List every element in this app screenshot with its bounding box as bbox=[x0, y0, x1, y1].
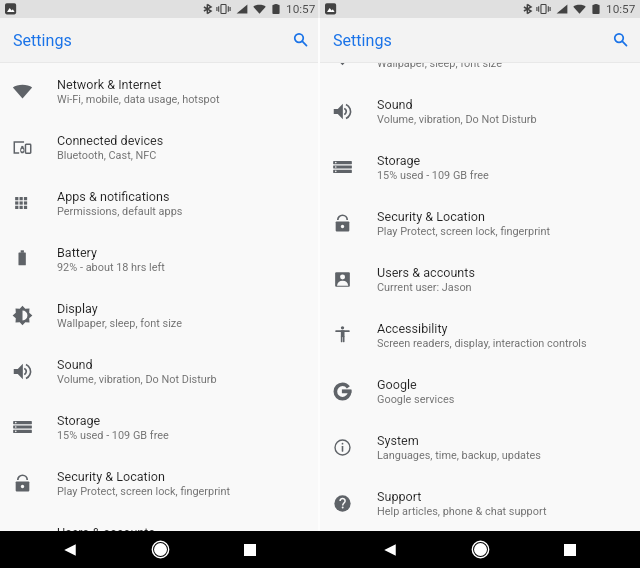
staticText: Help articles, phone & chat support bbox=[377, 505, 547, 518]
staticText: System bbox=[377, 433, 419, 448]
staticText: Wallpaper, sleep, font size bbox=[377, 63, 502, 70]
staticText: Security & Location bbox=[377, 209, 485, 224]
staticText: Storage bbox=[377, 153, 421, 168]
button[interactable]: Display bbox=[320, 63, 640, 83]
button[interactable]: Security & Location bbox=[320, 195, 640, 251]
button[interactable]: Recents bbox=[500, 531, 640, 568]
staticText: Play Protect, screen lock, fingerprint bbox=[57, 485, 231, 498]
staticText: 15% used - 109 GB free bbox=[57, 429, 169, 442]
staticText: Volume, vibration, Do Not Disturb bbox=[57, 373, 217, 386]
staticText: Accessibility bbox=[377, 321, 448, 336]
staticText: Google bbox=[377, 377, 417, 392]
staticText: Storage bbox=[57, 413, 101, 428]
button[interactable]: Apps & notifications bbox=[0, 175, 320, 231]
staticText: Sound bbox=[57, 357, 93, 372]
button[interactable]: Sound bbox=[320, 83, 640, 139]
button[interactable]: Google bbox=[320, 363, 640, 419]
button[interactable]: Network & Internet bbox=[0, 63, 320, 119]
staticText: Screen readers, display, interaction con… bbox=[377, 337, 587, 350]
staticText: Apps & notifications bbox=[57, 189, 170, 204]
button[interactable]: Search bbox=[605, 25, 635, 55]
staticText: 10:57 bbox=[606, 2, 636, 16]
button[interactable]: Support bbox=[320, 475, 640, 531]
staticText: Google services bbox=[377, 393, 455, 406]
staticText: 10:57 bbox=[286, 2, 316, 16]
staticText: Wallpaper, sleep, font size bbox=[57, 317, 182, 330]
staticText: Languages, time, backup, updates bbox=[377, 449, 541, 462]
button[interactable]: Users & accounts bbox=[0, 511, 320, 531]
staticText: 15% used - 109 GB free bbox=[377, 169, 489, 182]
button[interactable]: Sound bbox=[0, 343, 320, 399]
staticText: Users & accounts bbox=[57, 525, 155, 531]
staticText: 92% - about 18 hrs left bbox=[57, 261, 165, 274]
button[interactable]: Security & Location bbox=[0, 455, 320, 511]
staticText: Security & Location bbox=[57, 469, 165, 484]
staticText: Support bbox=[377, 489, 422, 504]
staticText: Sound bbox=[377, 97, 413, 112]
staticText: Settings bbox=[333, 31, 392, 50]
button[interactable]: Connected devices bbox=[0, 119, 320, 175]
staticText: Play Protect, screen lock, fingerprint bbox=[377, 225, 551, 238]
button[interactable]: Storage bbox=[0, 399, 320, 455]
staticText: Volume, vibration, Do Not Disturb bbox=[377, 113, 537, 126]
staticText: Permissions, default apps bbox=[57, 205, 183, 218]
button[interactable]: Search bbox=[285, 25, 315, 55]
staticText: Battery bbox=[57, 245, 97, 260]
staticText: Wi-Fi, mobile, data usage, hotspot bbox=[57, 93, 220, 106]
button[interactable]: Back bbox=[0, 531, 140, 568]
staticText: Users & accounts bbox=[377, 265, 475, 280]
button[interactable]: Home bbox=[460, 531, 500, 568]
button[interactable]: Accessibility bbox=[320, 307, 640, 363]
button[interactable]: Display bbox=[0, 287, 320, 343]
staticText: Settings bbox=[13, 31, 72, 50]
staticText: Display bbox=[57, 301, 98, 316]
button[interactable]: Back bbox=[320, 531, 460, 568]
button[interactable]: Recents bbox=[180, 531, 320, 568]
staticText: Bluetooth, Cast, NFC bbox=[57, 149, 157, 162]
staticText: Connected devices bbox=[57, 133, 164, 148]
button[interactable]: Users & accounts bbox=[320, 251, 640, 307]
staticText: Network & Internet bbox=[57, 77, 162, 92]
button[interactable]: System bbox=[320, 419, 640, 475]
button[interactable]: Battery bbox=[0, 231, 320, 287]
button[interactable]: Home bbox=[140, 531, 180, 568]
button[interactable]: Storage bbox=[320, 139, 640, 195]
staticText: Current user: Jason bbox=[377, 281, 472, 294]
